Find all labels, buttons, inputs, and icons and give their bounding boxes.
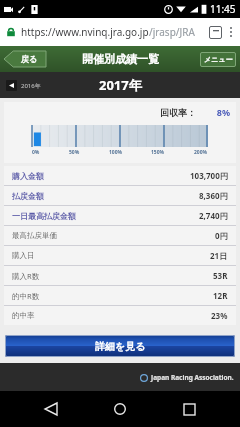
button[interactable]: 購入R数 [4,266,236,285]
button[interactable]: 詳細を見る [5,335,235,357]
staticText: 150% [151,149,165,156]
button[interactable]: 購入金額 [4,166,236,185]
staticText: 最高払戻単価 [12,231,57,240]
staticText: 8% [206,106,230,118]
staticText: 50% [69,149,80,156]
staticText: 53R [213,270,228,281]
staticText: 12R [213,290,228,301]
staticText: 2016年 [21,82,41,90]
button[interactable]: Back [33,391,69,427]
staticText: /jrasp/JRA [149,25,195,39]
staticText: 購入R数 [12,271,40,281]
staticText: 回収率： [160,107,196,118]
staticText: 払戻金額 [12,191,44,201]
staticText: 購入金額 [12,171,44,181]
button[interactable]: 最高払戻単価 [4,226,236,245]
button[interactable]: 払戻金額 [4,186,236,205]
button[interactable]: Recent apps [171,391,207,427]
button[interactable]: 戻る [4,51,46,67]
staticText: 2,740円 [199,210,228,221]
button[interactable]: 購入日 [4,246,236,265]
staticText: メニュー [204,55,233,64]
button[interactable]: More options [228,27,234,37]
staticText: 的中率 [12,311,35,320]
staticText: 購入日 [12,251,35,260]
staticText: 103,700円 [190,170,228,181]
button[interactable]: 的中率 [4,306,236,325]
button[interactable]: Home [102,391,138,427]
other: Secure [6,27,16,37]
staticText: 21日 [210,250,228,261]
staticText: 200% [194,149,208,156]
button[interactable]: 2016年 [6,80,41,91]
staticText: 2017年 [99,76,142,94]
staticText: 開催別成績一覧 [82,52,159,66]
staticText: 戻る [21,54,38,64]
staticText: 100% [109,149,123,156]
staticText: 11:45 [210,2,236,16]
staticText: 23% [211,310,228,321]
staticText: https://www.nvinq.jra.go.jp [21,25,149,39]
staticText: 的中R数 [12,291,40,301]
staticText: 詳細を見る [95,340,146,353]
staticText: 0% [32,149,40,156]
button[interactable]: 一日最高払戻金額 [4,206,236,225]
button[interactable]: メニュー [200,52,236,67]
staticText: Japan Racing Association. [151,373,234,382]
staticText: 一日最高払戻金額 [12,211,76,221]
staticText: 8,360円 [199,190,228,201]
button[interactable]: Tabs [209,26,222,39]
staticText: 0円 [215,230,228,241]
button[interactable]: 的中R数 [4,286,236,305]
